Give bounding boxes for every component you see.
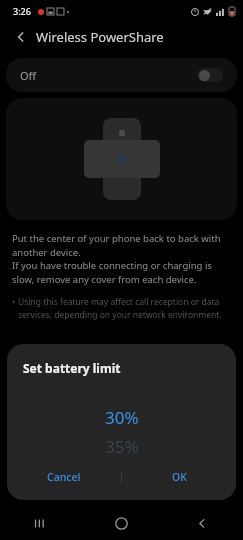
button[interactable]: Cancel (7, 462, 121, 492)
button[interactable]: Back (162, 506, 243, 540)
button[interactable]: Back (8, 24, 34, 50)
button[interactable]: OK (122, 462, 236, 492)
staticText: 3:26 (13, 5, 31, 17)
staticText: OK (172, 470, 187, 484)
staticText: Using this feature may affect call recep… (18, 296, 231, 320)
button[interactable]: Off (6, 58, 237, 92)
staticText: • (12, 296, 18, 307)
staticText: Wireless PowerShare (36, 28, 164, 46)
staticText: If you have trouble connecting or chargi… (12, 259, 231, 286)
staticText: Put the center of your phone back to bac… (12, 232, 231, 259)
staticText: Off (20, 68, 37, 83)
staticText: 30% (105, 406, 139, 429)
staticText: Cancel (47, 470, 81, 484)
staticText: 35% (105, 435, 139, 458)
button[interactable]: Home (81, 506, 162, 540)
staticText: Set battery limit (23, 360, 121, 376)
button[interactable]: Recent apps (0, 506, 81, 540)
